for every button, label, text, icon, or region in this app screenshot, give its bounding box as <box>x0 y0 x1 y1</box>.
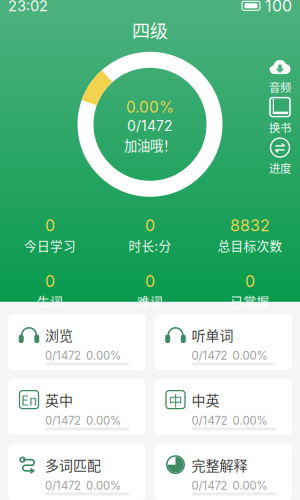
staticText: 0.00% <box>232 414 267 427</box>
staticText: 0.00% <box>86 414 121 427</box>
staticText: En <box>21 390 37 409</box>
button[interactable]: 完整解释 <box>154 444 292 500</box>
button[interactable]: 音频 <box>263 60 297 93</box>
staticText: 总目标次数 <box>217 236 282 254</box>
staticText: 0 <box>145 216 155 235</box>
button[interactable]: 中 <box>154 379 292 435</box>
staticText: 加油哦！ <box>124 135 176 155</box>
staticText: 换书 <box>269 119 291 135</box>
staticText: 听单词 <box>191 324 233 345</box>
staticText: 100 <box>260 0 292 15</box>
staticText: 今日学习 <box>24 236 76 254</box>
button[interactable]: 听单词 <box>154 314 292 370</box>
staticText: 0 <box>45 216 55 235</box>
staticText: 8832 <box>230 216 270 235</box>
staticText: 0 <box>145 271 155 291</box>
staticText: 0/1472 <box>127 117 173 134</box>
button[interactable]: 换书 <box>263 100 297 133</box>
staticText: 已掌握 <box>230 292 269 310</box>
staticText: 0.00% <box>232 349 267 362</box>
staticText: 生词 <box>37 292 63 310</box>
staticText: 0/1472 <box>191 349 227 362</box>
staticText: 0.00% <box>86 479 121 492</box>
staticText: 0/1472 <box>45 349 81 362</box>
staticText: 0/1472 <box>191 479 227 492</box>
staticText: 完整解释 <box>191 454 247 475</box>
staticText: 难词 <box>137 292 163 310</box>
staticText: 23:02 <box>8 0 48 15</box>
staticText: 0.00% <box>86 349 121 362</box>
staticText: 0.00% <box>232 479 267 492</box>
staticText: 0/1472 <box>191 414 227 427</box>
staticText: 四级 <box>132 17 168 43</box>
staticText: 多词匹配 <box>45 454 101 475</box>
button[interactable]: 多词匹配 <box>8 444 145 500</box>
staticText: 0 <box>245 271 255 291</box>
staticText: 中 <box>168 389 182 410</box>
button[interactable]: En <box>8 379 145 435</box>
staticText: 0/1472 <box>45 414 81 427</box>
staticText: 时长:分 <box>128 236 171 254</box>
staticText: 0/1472 <box>45 479 81 492</box>
button[interactable]: 浏览 <box>8 314 145 370</box>
staticText: 0.00% <box>126 98 174 116</box>
staticText: 音频 <box>269 79 291 95</box>
staticText: 浏览 <box>45 324 73 345</box>
staticText: 进度 <box>269 160 291 176</box>
button[interactable]: 进度 <box>263 141 297 174</box>
staticText: 英中 <box>45 389 73 410</box>
staticText: 中英 <box>191 389 219 410</box>
staticText: 0 <box>45 271 55 291</box>
